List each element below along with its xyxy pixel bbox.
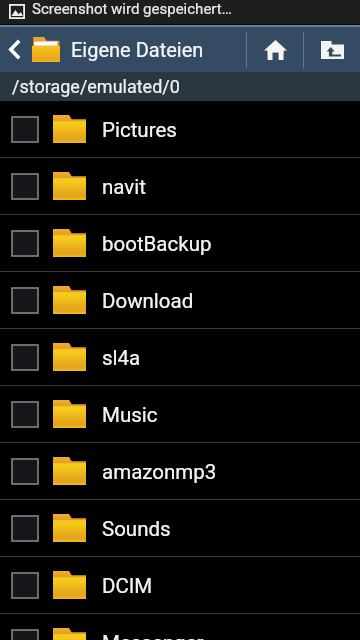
button[interactable]: Sounds [0,500,360,556]
button[interactable]: Music [0,386,360,442]
button[interactable]: navit [0,158,360,214]
button[interactable]: Download [0,272,360,328]
staticText: amazonmp3 [102,460,217,484]
staticText: Screenshot wird gespeichert… [32,0,232,18]
staticText: Pictures [102,118,177,142]
button[interactable]: DCIM [0,557,360,613]
staticText: navit [102,175,146,199]
button[interactable]: Home [247,27,303,72]
button[interactable]: Up one level [304,27,360,72]
staticText: Sounds [102,517,171,541]
staticText: sl4a [102,346,141,370]
staticText: /storage/emulated/0 [12,76,180,97]
button[interactable]: Messenger [0,614,360,640]
staticText: DCIM [102,574,153,598]
button[interactable]: sl4a [0,329,360,385]
staticText: Eigene Dateien [71,38,204,61]
button[interactable]: Pictures [0,101,360,157]
staticText: bootBackup [102,232,212,256]
staticText: Messenger [102,631,204,640]
staticText: Download [102,289,194,313]
button[interactable]: bootBackup [0,215,360,271]
staticText: Music [102,403,158,427]
button[interactable]: Eigene Dateien [0,27,246,72]
button[interactable]: amazonmp3 [0,443,360,499]
